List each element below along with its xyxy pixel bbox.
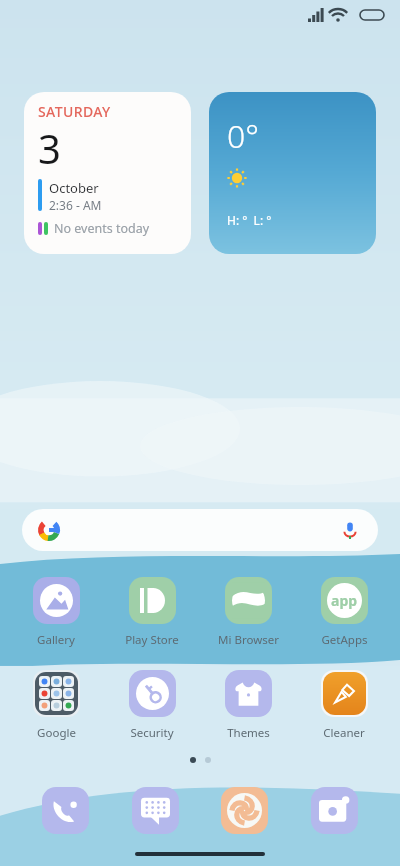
staticText: October <box>49 179 99 197</box>
staticText: app <box>331 591 358 610</box>
staticText: Play Store <box>125 632 179 648</box>
staticText: 2:36 - AM <box>49 197 102 213</box>
staticText: 3 <box>38 121 61 175</box>
button[interactable]: Security <box>112 670 192 741</box>
button[interactable]: SATURDAY <box>24 92 191 254</box>
staticText: Themes <box>227 725 270 741</box>
staticText: H: ° L: ° <box>227 212 272 228</box>
staticText: Mi Browser <box>218 632 279 648</box>
staticText: GetApps <box>321 632 368 648</box>
staticText: Google <box>37 725 76 741</box>
staticText: Gallery <box>37 632 75 648</box>
button[interactable]: Mi Browser <box>208 577 288 648</box>
button[interactable]: Phone <box>42 787 89 834</box>
button[interactable]: app <box>304 577 384 648</box>
button[interactable]: Google <box>16 670 96 741</box>
staticText: SATURDAY <box>38 102 111 121</box>
button[interactable]: Gallery <box>16 577 96 648</box>
staticText: Security <box>130 725 174 741</box>
button[interactable]: Camera <box>311 787 358 834</box>
button[interactable]: Google search <box>22 509 378 551</box>
button[interactable]: Messages <box>132 787 179 834</box>
staticText: 0° <box>227 114 259 158</box>
button[interactable]: 0° <box>209 92 376 254</box>
button[interactable]: Cleaner <box>304 670 384 741</box>
button[interactable]: Browser <box>221 787 268 834</box>
button[interactable]: Play Store <box>112 577 192 648</box>
button[interactable]: Themes <box>208 670 288 741</box>
staticText: Cleaner <box>323 725 365 741</box>
staticText: No events today <box>54 220 150 237</box>
